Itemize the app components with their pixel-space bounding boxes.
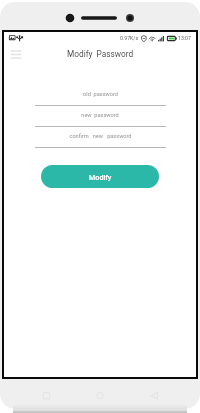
button[interactable]: Modify (41, 165, 159, 188)
staticText: 13:07 (178, 35, 191, 41)
staticText: 0.97K/s (120, 35, 139, 41)
staticText: old password (83, 91, 118, 98)
staticText: confirm new password (69, 133, 132, 140)
staticText: Modify Password (67, 49, 134, 59)
staticText: Modify (89, 173, 112, 181)
button[interactable]: Open navigation menu (8, 45, 26, 63)
staticText: new password (81, 112, 119, 119)
